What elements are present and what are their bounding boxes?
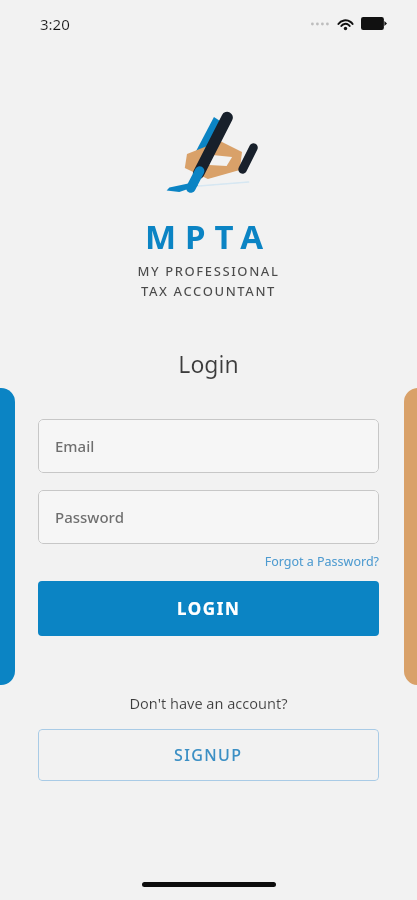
staticText: Login (0, 348, 417, 379)
staticText: 3:20 (40, 14, 70, 34)
staticText: MY PROFESSIONAL (0, 262, 417, 280)
button[interactable]: Password (38, 490, 379, 544)
staticText: MPTA (0, 214, 417, 259)
staticText: Don't have an account? (0, 693, 417, 713)
button[interactable] (0, 388, 15, 685)
staticText: Password (55, 507, 124, 527)
button[interactable]: Forgot a Password? (0, 553, 379, 570)
staticText: Email (55, 436, 95, 456)
button[interactable]: SIGNUP (38, 729, 379, 781)
button[interactable]: LOGIN (38, 581, 379, 636)
button[interactable]: Email (38, 419, 379, 473)
staticText: TAX ACCOUNTANT (0, 282, 417, 300)
staticText: LOGIN (177, 597, 241, 620)
button[interactable] (404, 388, 417, 685)
staticText: SIGNUP (174, 744, 243, 766)
